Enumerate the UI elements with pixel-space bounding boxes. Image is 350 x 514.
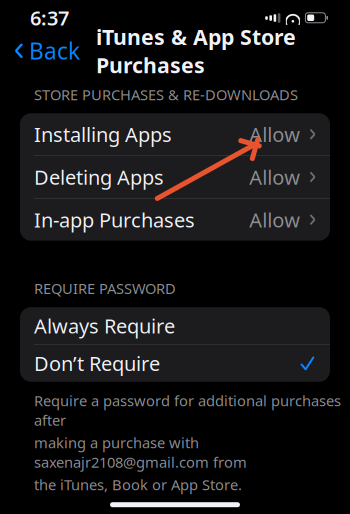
staticText: Allow xyxy=(249,121,300,148)
staticText: Require a password for additional purcha… xyxy=(34,391,341,430)
button[interactable]: Always Require xyxy=(20,307,330,344)
staticText: REQUIRE PASSWORD xyxy=(34,279,176,298)
staticText: STORE PURCHASES & RE-DOWNLOADS xyxy=(34,85,298,104)
staticText: Deleting Apps xyxy=(34,164,164,190)
staticText: the iTunes, Book or App Store. xyxy=(34,475,242,494)
staticText: 6:37 xyxy=(30,4,69,31)
staticText: Don’t Require xyxy=(34,350,160,377)
button[interactable]: In-app Purchases xyxy=(20,199,330,241)
button[interactable]: Deleting Apps xyxy=(20,156,330,198)
staticText: Allow xyxy=(249,164,300,190)
staticText: Allow xyxy=(249,206,300,233)
staticText: Back xyxy=(29,36,80,66)
staticText: making a purchase with saxenajr2108@gmai… xyxy=(34,433,247,472)
button[interactable]: Don’t Require xyxy=(20,345,330,382)
staticText: Always Require xyxy=(34,312,175,339)
button[interactable]: Installing Apps xyxy=(20,113,330,155)
staticText: In-app Purchases xyxy=(34,206,195,233)
button[interactable]: Back xyxy=(12,30,82,72)
staticText: iTunes & App Store Purchases xyxy=(96,22,296,79)
staticText: Installing Apps xyxy=(34,121,172,148)
